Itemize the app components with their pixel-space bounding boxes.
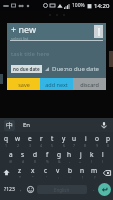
staticText: & [58, 159, 61, 163]
staticText: 6 [63, 143, 66, 147]
staticText: save [18, 81, 30, 88]
button[interactable]: f [41, 150, 53, 163]
staticText: . [93, 185, 95, 193]
button[interactable]: y [58, 134, 69, 147]
staticText: Due:no due date [52, 65, 99, 73]
staticText: no due date [13, 66, 40, 72]
staticText: task title here [11, 50, 50, 58]
staticText: e [28, 134, 32, 143]
button[interactable]: Comma [16, 182, 25, 196]
staticText: + [79, 159, 82, 163]
staticText: ! [82, 175, 83, 179]
button[interactable]: d [29, 150, 41, 163]
button[interactable]: Chinese input [4, 120, 15, 131]
staticText: 4 [40, 143, 43, 147]
button[interactable]: Enter [98, 183, 111, 196]
button[interactable]: Priority [94, 25, 103, 38]
button[interactable]: x [26, 166, 39, 179]
button[interactable]: n [76, 166, 88, 179]
staticText: * [19, 175, 21, 179]
staticText: 100% [72, 2, 85, 9]
staticText: f [46, 150, 49, 159]
staticText: i [85, 134, 87, 143]
staticText: m [91, 166, 98, 175]
button[interactable]: h [64, 150, 75, 163]
button[interactable]: task title here [11, 49, 102, 58]
staticText: 中 [6, 121, 13, 130]
staticText: ) [102, 159, 104, 163]
staticText: w [15, 134, 21, 143]
button[interactable]: o [91, 134, 102, 147]
staticText: ?123 [4, 186, 15, 193]
staticText: : [58, 175, 59, 179]
staticText: p [106, 134, 110, 143]
staticText: d [33, 150, 37, 159]
button[interactable]: c [39, 166, 52, 179]
staticText: 3 [29, 143, 32, 147]
staticText: t [51, 134, 54, 143]
button[interactable]: q [0, 134, 12, 147]
staticText: @ [9, 159, 13, 163]
button[interactable]: add next [40, 78, 73, 90]
button[interactable]: l [97, 150, 108, 163]
staticText: + new [11, 23, 37, 35]
staticText: q [4, 134, 8, 143]
button[interactable]: a [5, 150, 17, 163]
staticText: y [62, 134, 66, 143]
staticText: z [18, 166, 22, 175]
button[interactable]: g [53, 150, 64, 163]
staticText: add next [45, 81, 68, 88]
button[interactable]: + new [11, 23, 94, 40]
button[interactable]: t [47, 134, 58, 147]
staticText: l [102, 150, 104, 159]
staticText: r [40, 134, 43, 143]
staticText: " [32, 175, 34, 179]
button[interactable]: Emoji [25, 184, 35, 194]
button[interactable]: e [24, 134, 36, 147]
button[interactable]: no due date [13, 65, 40, 73]
button[interactable]: v [52, 166, 64, 179]
staticText: ( [91, 159, 93, 163]
button[interactable]: ?123 [2, 182, 16, 196]
staticText: n [80, 166, 85, 175]
staticText: g [57, 150, 61, 159]
button[interactable]: p [102, 134, 113, 147]
staticText: ? [94, 175, 96, 179]
staticText: 7 [73, 143, 76, 147]
button[interactable]: j [75, 150, 86, 163]
button[interactable]: s [17, 150, 29, 163]
staticText: x [31, 166, 35, 175]
button[interactable]: b [64, 166, 76, 179]
button[interactable]: k [86, 150, 97, 163]
button[interactable]: En [23, 121, 31, 129]
staticText: select list [11, 36, 29, 40]
staticText: 14:20 [94, 2, 110, 10]
staticText: ; [70, 175, 71, 179]
button[interactable]: m [88, 166, 100, 179]
staticText: ' [46, 175, 47, 179]
staticText: , [20, 185, 22, 193]
staticText: h [67, 150, 72, 159]
staticText: - [69, 159, 71, 163]
button[interactable]: save [7, 78, 40, 90]
staticText: c [44, 166, 48, 175]
staticText: v [56, 166, 60, 175]
button[interactable]: Voice input [99, 120, 109, 130]
staticText: j [80, 150, 82, 159]
button[interactable]: i [80, 134, 91, 147]
staticText: 9 [96, 143, 99, 147]
button[interactable]: r [36, 134, 47, 147]
button[interactable]: discard [73, 78, 106, 90]
button[interactable]: w [12, 134, 24, 147]
staticText: English [54, 187, 70, 193]
button[interactable]: Backspace [100, 166, 113, 179]
staticText: u [72, 134, 77, 143]
button[interactable]: Shift [0, 166, 13, 179]
staticText: b [68, 166, 72, 175]
button[interactable]: u [69, 134, 80, 147]
button[interactable]: z [13, 166, 26, 179]
staticText: En [23, 121, 31, 129]
staticText: % [46, 159, 49, 163]
